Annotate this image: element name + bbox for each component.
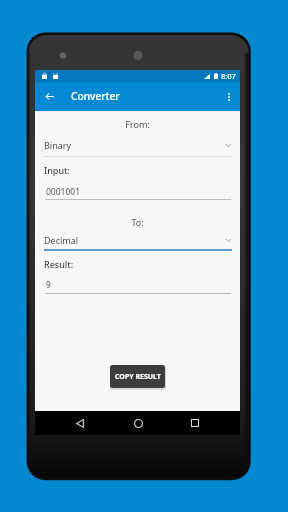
button[interactable]: Home: [128, 413, 148, 433]
staticText: 9: [46, 279, 51, 291]
button[interactable]: Binary: [35, 136, 240, 159]
staticText: 0001001: [46, 186, 81, 198]
button[interactable]: Decimal: [35, 231, 240, 252]
staticText: Decimal: [44, 234, 79, 246]
button[interactable]: More options: [218, 82, 240, 111]
staticText: 8:07: [221, 71, 236, 81]
staticText: To:: [35, 216, 240, 228]
staticText: Binary: [44, 139, 72, 151]
button[interactable]: Recent apps: [185, 413, 205, 433]
button[interactable]: Back: [70, 413, 90, 433]
staticText: Result:: [44, 258, 74, 270]
staticText: Input:: [44, 164, 70, 176]
staticText: COPY RESULT: [115, 372, 161, 382]
staticText: Converter: [71, 89, 120, 103]
staticText: From:: [35, 118, 240, 130]
button[interactable]: Navigate up: [38, 82, 60, 111]
button[interactable]: COPY RESULT: [110, 365, 165, 388]
